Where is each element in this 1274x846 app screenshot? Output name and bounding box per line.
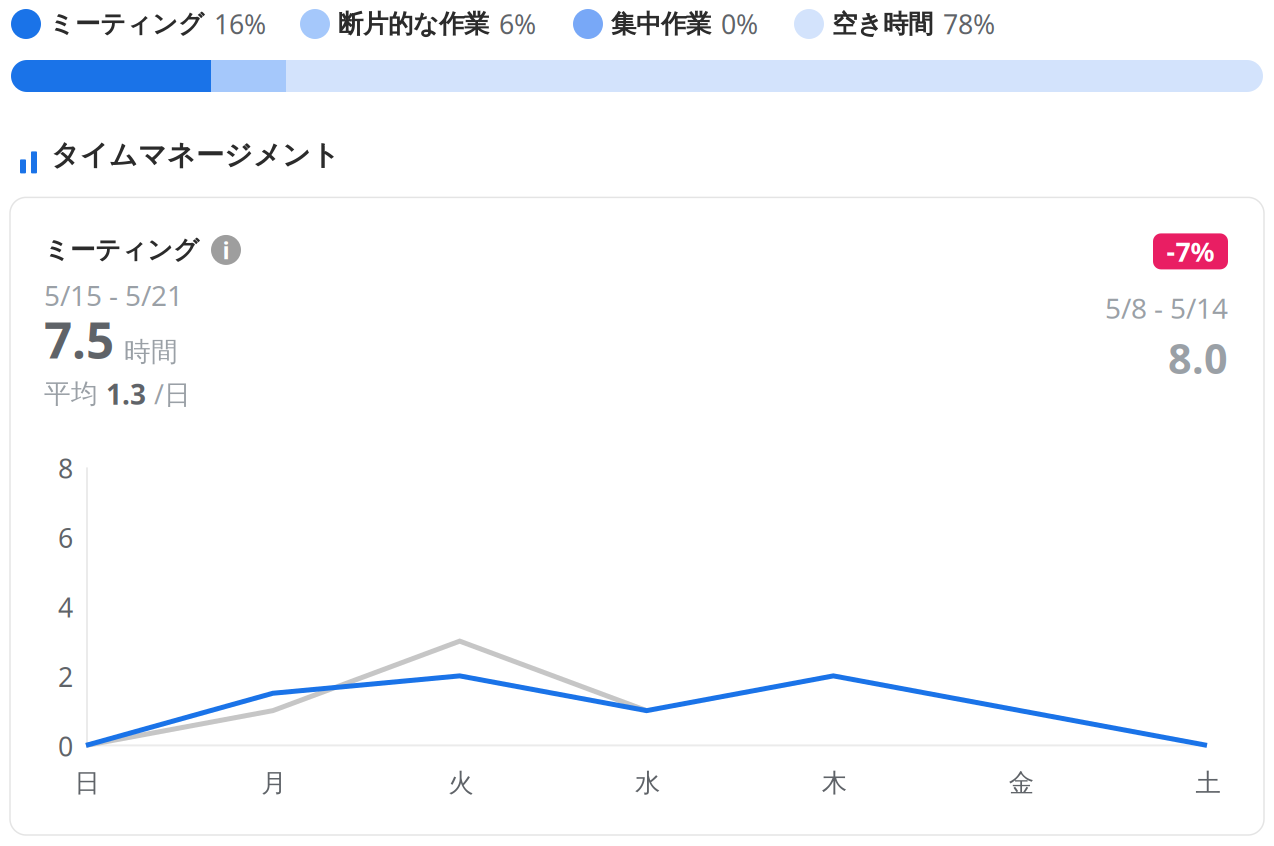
staticText: 火 [448,767,473,798]
button[interactable]: 詳細情報 [211,235,241,265]
staticText: 6 [58,520,73,555]
staticText: 5/8 - 5/14 [1105,289,1228,327]
staticText: 78% [943,6,995,42]
staticText: 水 [635,767,660,798]
staticText: 平均 [44,377,98,410]
staticText: i [222,234,229,266]
staticText: 7.5 [44,307,114,372]
staticText: 木 [822,767,847,798]
staticText: 0 [58,728,73,764]
staticText: 8 [58,450,73,486]
staticText: 土 [1195,767,1220,798]
button[interactable]: 空き時間 [758,6,995,42]
staticText: 16% [214,6,266,42]
staticText: 断片的な作業 [338,8,489,39]
staticText: 時間 [124,335,178,368]
staticText: 2 [58,659,73,694]
staticText: 月 [261,767,286,798]
staticText: 0% [721,6,758,42]
staticText: /日 [154,376,191,411]
staticText: 8.0 [1168,331,1228,385]
staticText: 空き時間 [832,8,933,39]
staticText: タイムマネージメント [51,138,340,172]
staticText: ミーティング [44,234,199,265]
staticText: 1.3 [106,375,146,412]
staticText: 5/15 - 5/21 [44,276,183,314]
button[interactable]: ミーティング [0,6,266,42]
staticText: ミーティング [49,8,204,39]
button[interactable]: 断片的な作業 [266,6,536,42]
staticText: 集中作業 [611,8,711,39]
button[interactable]: 集中作業 [536,6,758,42]
staticText: 日 [74,767,99,798]
staticText: 金 [1009,767,1034,798]
staticText: 4 [58,589,73,625]
staticText: -7% [1166,234,1214,269]
staticText: 6% [499,6,536,42]
